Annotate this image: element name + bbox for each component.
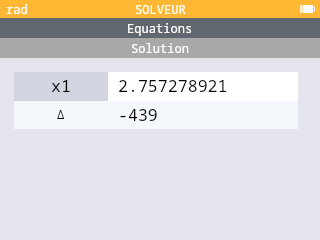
staticText: Solution <box>131 40 190 56</box>
button[interactable]: Δ <box>14 101 108 129</box>
staticText: x1 <box>51 74 71 97</box>
staticText: -439 <box>118 103 158 126</box>
staticText: SOLVEUR <box>135 1 186 17</box>
button[interactable]: -439 <box>108 101 298 129</box>
button[interactable]: Solution <box>0 38 320 58</box>
staticText: Δ <box>57 106 65 122</box>
staticText: Equations <box>127 20 193 36</box>
button[interactable]: Equations <box>0 18 320 38</box>
button[interactable]: 2.757278921 <box>108 72 298 101</box>
staticText: rad <box>6 1 28 17</box>
staticText: 2.757278921 <box>118 74 228 97</box>
other: Battery level <box>300 5 316 13</box>
button[interactable]: x1 <box>14 72 108 101</box>
